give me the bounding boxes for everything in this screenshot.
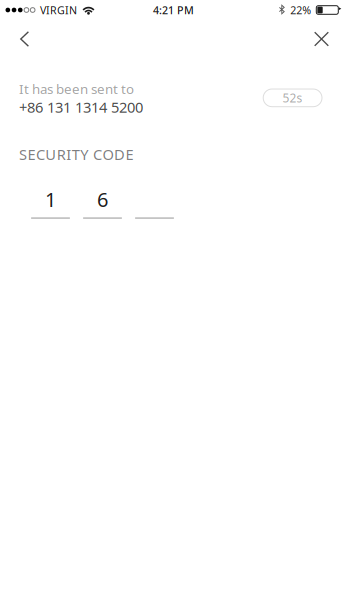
button[interactable] <box>135 190 174 219</box>
staticText: 22% <box>290 3 311 17</box>
staticText: 4:21 PM <box>153 3 194 17</box>
button[interactable]: Back <box>0 20 69 58</box>
staticText: It has been sent to <box>19 80 134 98</box>
staticText: SECURITY CODE <box>19 145 133 164</box>
staticText: 6 <box>97 186 108 212</box>
staticText: VIRGIN <box>40 3 77 17</box>
button[interactable]: 52s <box>263 89 322 107</box>
button[interactable]: Close <box>281 20 345 58</box>
staticText: 1 <box>45 186 56 212</box>
staticText: +86 131 1314 5200 <box>19 97 143 117</box>
button[interactable]: 1 <box>31 190 70 219</box>
staticText: 52s <box>283 90 303 106</box>
button[interactable]: 6 <box>83 190 122 219</box>
